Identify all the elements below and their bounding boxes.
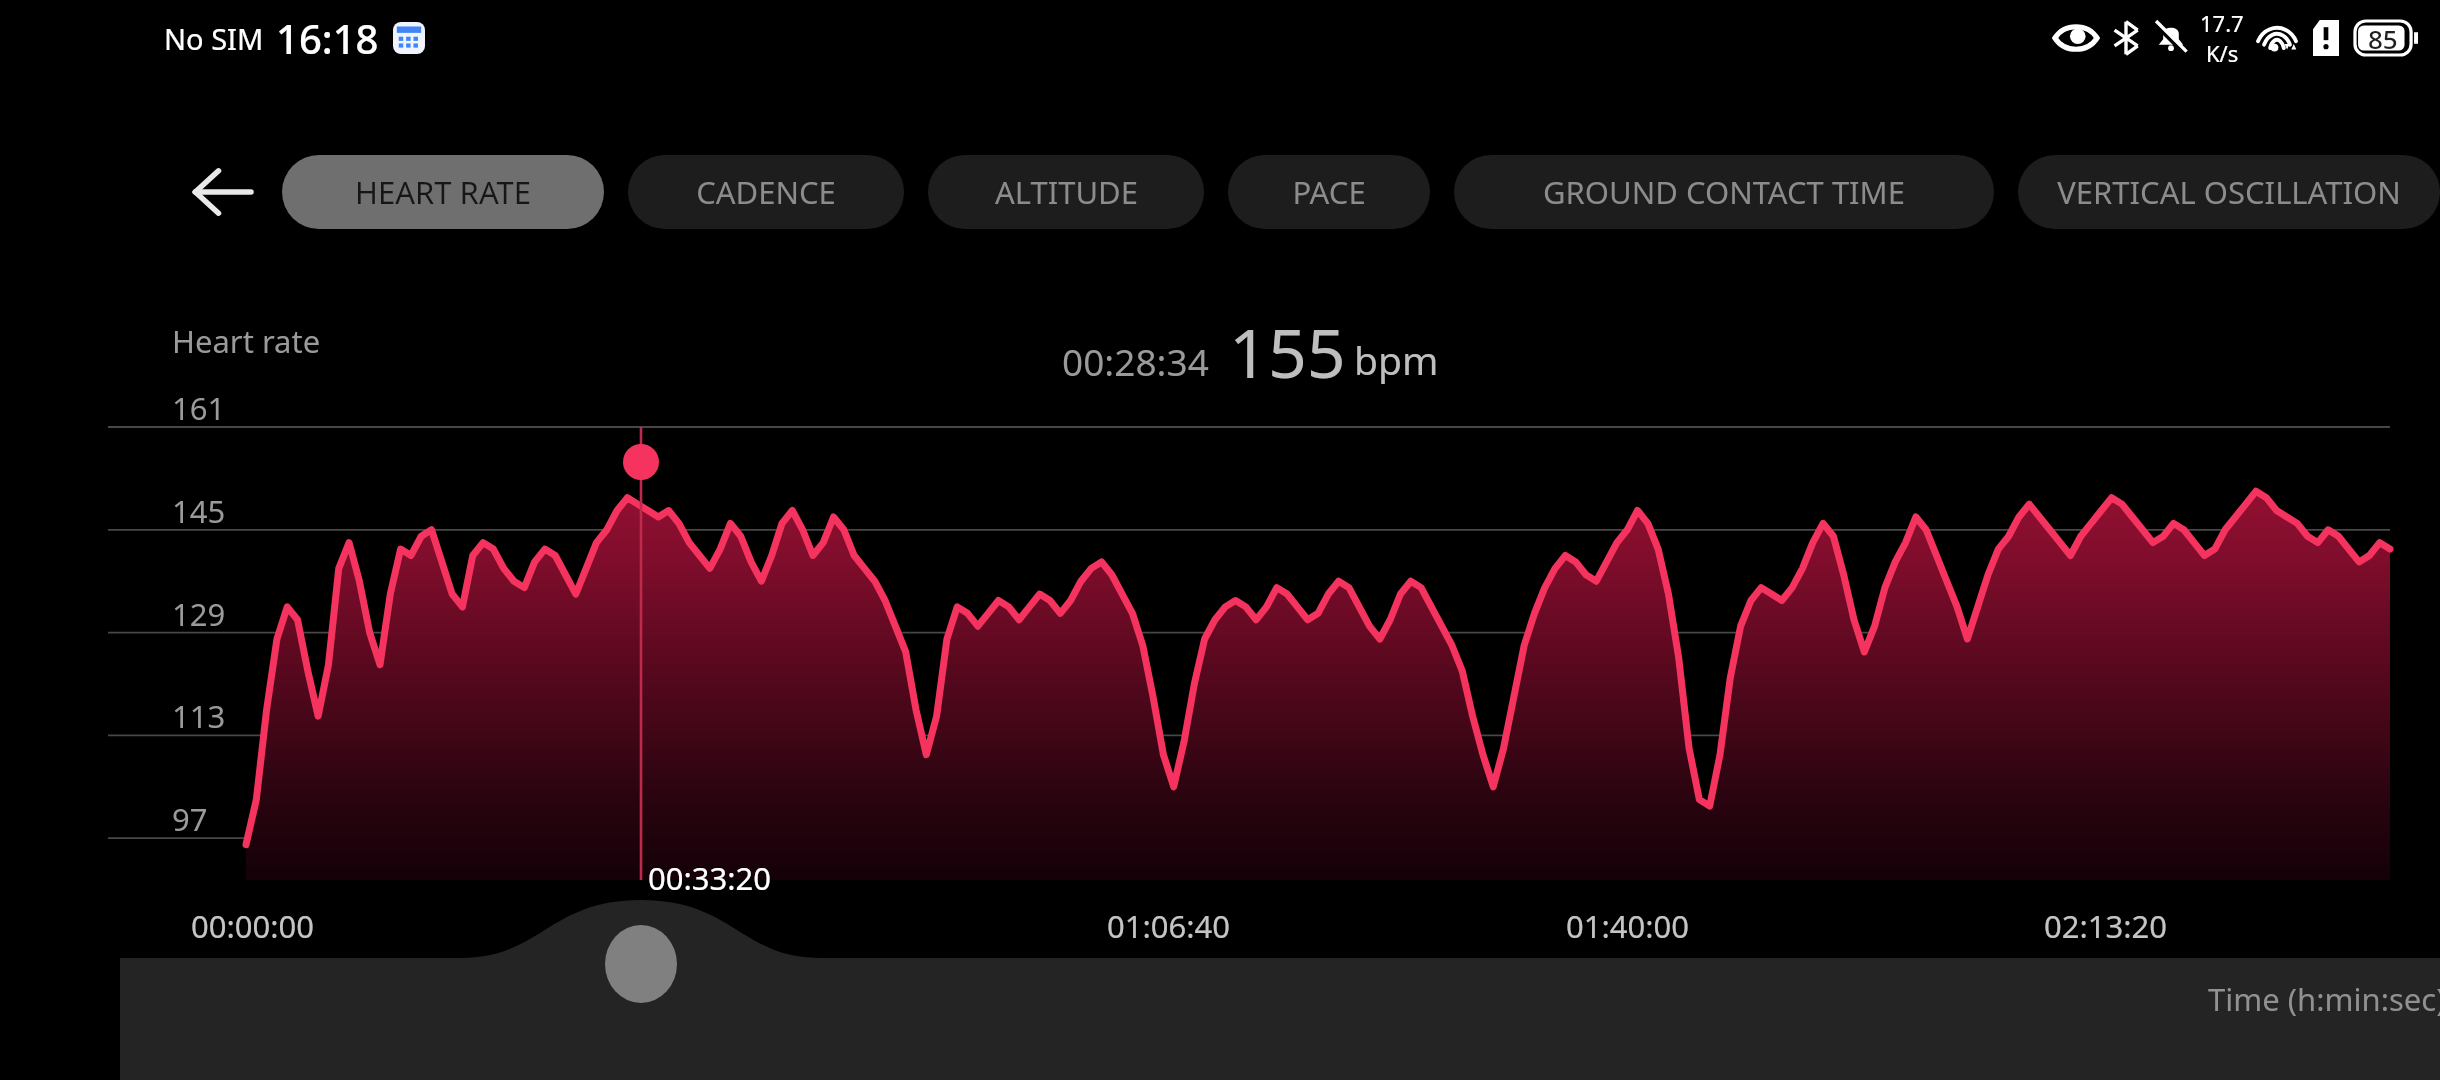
staticText: No SIM <box>164 19 264 58</box>
staticText: PACE <box>1292 171 1366 213</box>
staticText: 01:06:40 <box>1107 905 1231 947</box>
button[interactable]: CADENCE <box>628 155 904 229</box>
button[interactable]: GROUND CONTACT TIME <box>1454 155 1994 229</box>
staticText: 145 <box>172 490 226 532</box>
staticText: ALTITUDE <box>995 171 1138 213</box>
staticText: 00:28:34 <box>1062 336 1209 386</box>
staticText: 00:00:00 <box>191 905 315 947</box>
staticText: K/s <box>2206 38 2239 68</box>
staticText: HEART RATE <box>355 171 531 213</box>
staticText: 17.7 <box>2200 8 2244 38</box>
staticText: VERTICAL OSCILLATION <box>2057 171 2401 213</box>
staticText: 161 <box>172 387 226 429</box>
staticText: 00:33:20 <box>648 857 772 899</box>
staticText: 01:40:00 <box>1566 905 1690 947</box>
button[interactable]: HEART RATE <box>282 155 604 229</box>
button[interactable]: PACE <box>1228 155 1430 229</box>
staticText: Time (h:min:sec) <box>2208 978 2440 1020</box>
staticText: 02:13:20 <box>2044 905 2168 947</box>
staticText: bpm <box>1354 333 1439 386</box>
button[interactable]: Back <box>176 154 268 230</box>
button[interactable]: ALTITUDE <box>928 155 1204 229</box>
staticText: CADENCE <box>696 171 836 213</box>
staticText: 97 <box>172 798 208 840</box>
button[interactable]: VERTICAL OSCILLATION <box>2018 155 2440 229</box>
staticText: 155 <box>1229 305 1346 398</box>
staticText: 113 <box>172 695 226 737</box>
staticText: 85 <box>2368 21 2398 56</box>
staticText: 16:18 <box>276 11 379 65</box>
staticText: 129 <box>172 593 226 635</box>
staticText: Heart rate <box>172 320 321 362</box>
staticText: GROUND CONTACT TIME <box>1543 171 1905 213</box>
